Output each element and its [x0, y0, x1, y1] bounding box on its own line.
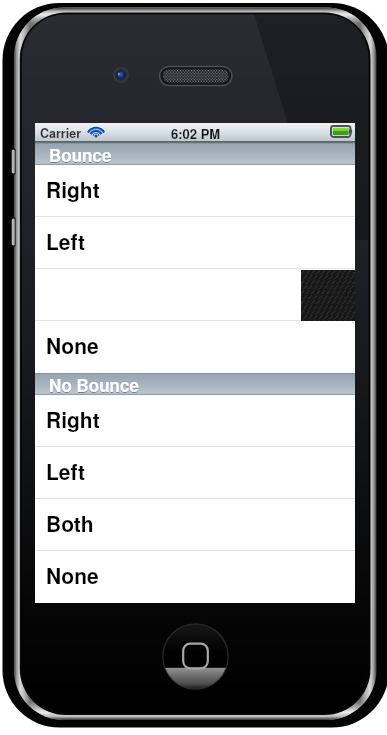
- staticText: None: [46, 330, 99, 360]
- button[interactable]: Both: [35, 499, 355, 551]
- button[interactable]: [35, 269, 355, 321]
- staticText: Bounce: [49, 144, 112, 166]
- staticText: No Bounce: [49, 374, 139, 396]
- button[interactable]: Right: [35, 165, 355, 217]
- staticText: 6:02 PM: [171, 124, 221, 143]
- staticText: None: [46, 560, 99, 590]
- button[interactable]: Right: [35, 395, 355, 447]
- staticText: No Bounce: [49, 373, 139, 395]
- staticText: Right: [46, 404, 100, 434]
- button[interactable]: Left: [35, 217, 355, 269]
- staticText: Left: [46, 226, 85, 256]
- staticText: Bounce: [49, 143, 112, 165]
- button[interactable]: None: [35, 321, 355, 373]
- button[interactable]: None: [35, 551, 355, 603]
- staticText: Left: [46, 456, 85, 486]
- staticText: Right: [46, 174, 100, 204]
- button[interactable]: Home: [162, 623, 229, 690]
- button[interactable]: Left: [35, 447, 355, 499]
- staticText: Both: [46, 508, 94, 538]
- staticText: Carrier: [40, 124, 81, 142]
